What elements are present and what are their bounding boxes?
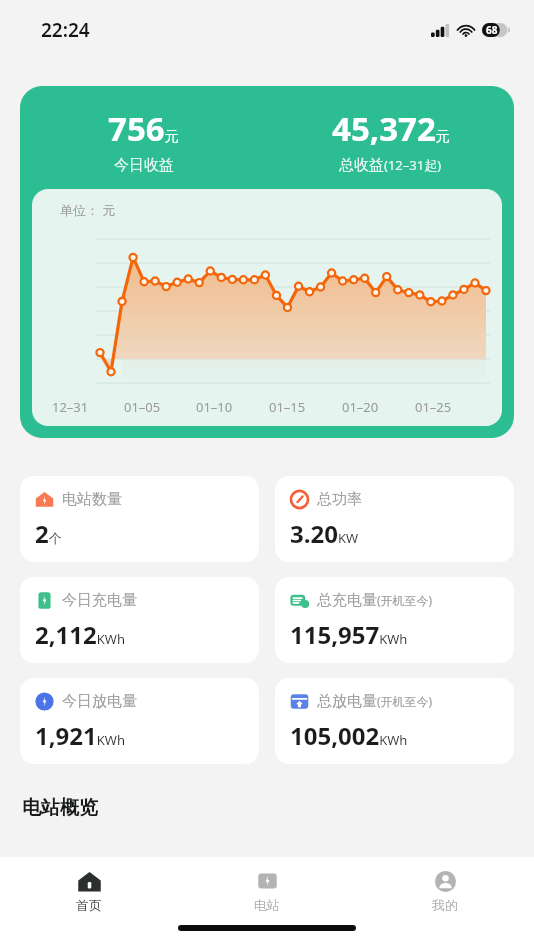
staticText: 01–15 <box>269 398 342 416</box>
staticText: 单位： 元 <box>60 201 116 219</box>
button[interactable]: 我的 <box>356 857 534 925</box>
staticText: 我的 <box>432 897 458 913</box>
button[interactable]: 首页 <box>0 857 178 925</box>
staticText: 12–31 <box>52 398 124 416</box>
staticText: 01–05 <box>124 398 196 416</box>
staticText: 总收益(12–31起) <box>339 156 442 175</box>
button[interactable]: 电站数量 <box>20 476 259 562</box>
staticText: 今日放电量 <box>62 692 137 711</box>
other: 首页 <box>77 869 102 894</box>
button[interactable]: 今日放电量 <box>20 678 259 764</box>
staticText: 756元 <box>108 106 179 151</box>
button[interactable]: 总功率 <box>275 476 514 562</box>
staticText: 电站 <box>254 897 280 913</box>
staticText: 68 <box>486 23 498 37</box>
other: 我的 <box>433 869 458 894</box>
staticText: 115,957KWh <box>290 618 408 651</box>
staticText: 01–10 <box>196 398 269 416</box>
button[interactable]: 756元 <box>20 86 514 438</box>
staticText: 今日收益 <box>114 156 174 175</box>
staticText: 2个 <box>35 517 62 550</box>
button[interactable]: 电站 <box>178 857 356 925</box>
staticText: 01–20 <box>342 398 415 416</box>
button[interactable]: 总放电量(开机至今) <box>275 678 514 764</box>
staticText: 105,002KWh <box>290 719 408 752</box>
staticText: 01–25 <box>415 398 488 416</box>
other: 电站 <box>255 869 280 894</box>
staticText: 总充电量(开机至今) <box>317 591 433 610</box>
button[interactable]: 总充电量(开机至今) <box>275 577 514 663</box>
staticText: 首页 <box>76 897 102 913</box>
staticText: 今日充电量 <box>62 591 137 610</box>
staticText: 电站数量 <box>62 490 122 509</box>
staticText: 3.20KW <box>290 517 359 550</box>
staticText: 总功率 <box>317 490 362 509</box>
staticText: 45,372元 <box>332 106 450 151</box>
staticText: 22:24 <box>41 17 90 43</box>
staticText: 2,112KWh <box>35 618 125 651</box>
staticText: 1,921KWh <box>35 719 125 752</box>
button[interactable]: 今日充电量 <box>20 577 259 663</box>
staticText: 总放电量(开机至今) <box>317 692 433 711</box>
staticText: 电站概览 <box>22 796 98 820</box>
